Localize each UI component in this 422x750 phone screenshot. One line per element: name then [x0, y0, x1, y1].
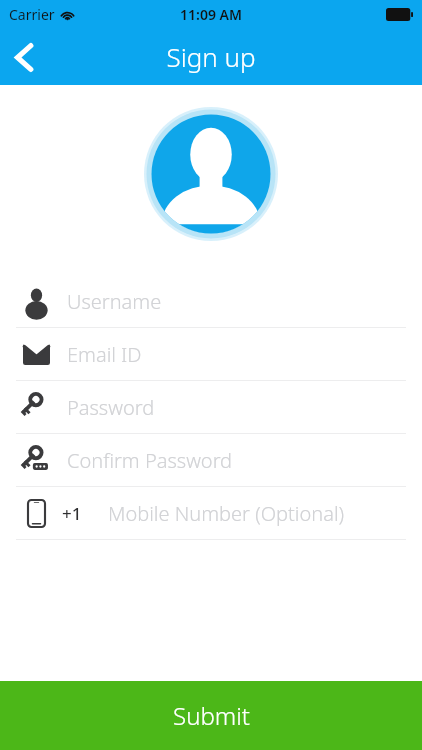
staticText: Carrier [9, 5, 55, 24]
staticText: Mobile Number (Optional) [108, 500, 345, 527]
staticText: Sign up [166, 39, 256, 74]
button[interactable]: Password [0, 381, 422, 433]
staticText: Submit [173, 699, 250, 732]
staticText: +1 [62, 502, 82, 525]
button[interactable]: Username [0, 275, 422, 327]
staticText: Username [67, 288, 162, 315]
button[interactable]: Submit [0, 681, 422, 750]
staticText: Confirm Password [67, 447, 233, 474]
button[interactable]: +1 [0, 487, 422, 539]
staticText: Email ID [67, 341, 142, 368]
staticText: 11:09 AM [180, 5, 242, 24]
button[interactable]: Email ID [0, 328, 422, 380]
button[interactable]: Confirm Password [0, 434, 422, 486]
staticText: Password [67, 394, 155, 421]
button[interactable]: Back [0, 33, 48, 81]
button[interactable]: Profile photo [144, 107, 278, 241]
